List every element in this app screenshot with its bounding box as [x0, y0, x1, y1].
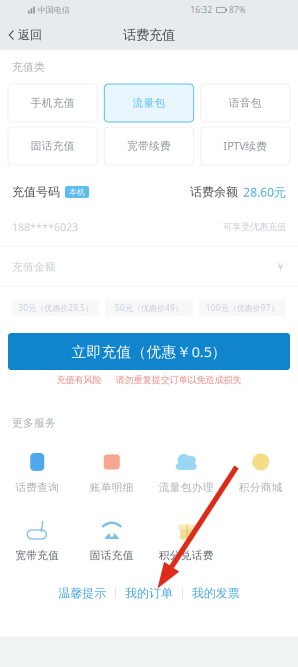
- staticText: 话费查询: [15, 481, 59, 494]
- staticText: 充值有风险: [56, 374, 101, 386]
- button[interactable]: 手机充值: [8, 84, 97, 122]
- button[interactable]: 返回: [0, 20, 50, 50]
- staticText: 积分商城: [239, 481, 283, 494]
- button[interactable]: 积分商城: [223, 450, 298, 494]
- button[interactable]: 我的发票: [183, 586, 249, 601]
- button[interactable]: 固话充值: [8, 127, 97, 165]
- button[interactable]: 宽带充值: [0, 518, 74, 562]
- staticText: 充值类: [12, 60, 45, 73]
- staticText: 账单明细: [90, 481, 134, 494]
- staticText: 充值号码: [12, 185, 60, 199]
- staticText: 本机: [69, 187, 85, 197]
- staticText: 充值金额: [12, 260, 56, 273]
- staticText: 流量包办理: [159, 481, 214, 494]
- staticText: 可享受优惠充值: [223, 221, 286, 233]
- staticText: 手机充值: [31, 96, 75, 109]
- staticText: 100元（优惠价97）: [206, 303, 279, 313]
- staticText: 固话充值: [90, 549, 134, 562]
- staticText: 188****6023: [12, 220, 78, 234]
- staticText: 28.60元: [243, 184, 286, 200]
- staticText: 流量包: [132, 96, 165, 109]
- button[interactable]: 立即充值（优惠￥0.5）: [8, 333, 290, 370]
- staticText: 30元（优惠价29.5）: [18, 303, 93, 313]
- button[interactable]: 50元（优惠价49）: [105, 300, 193, 316]
- staticText: 16:32: [190, 5, 212, 15]
- staticText: 87%: [229, 5, 246, 15]
- button[interactable]: 账单明细: [74, 450, 149, 494]
- staticText: 立即充值（优惠￥0.5）: [71, 342, 226, 361]
- staticText: 50元（优惠价49）: [115, 303, 183, 313]
- staticText: 返回: [18, 28, 42, 42]
- button[interactable]: 宽带续费: [104, 127, 194, 165]
- staticText: 请勿重复提交订单以免造成损失: [115, 374, 241, 386]
- staticText: 语音包: [229, 96, 262, 109]
- button[interactable]: 固话充值: [74, 518, 149, 562]
- staticText: 宽带续费: [127, 139, 171, 152]
- staticText: 话费余额: [190, 185, 238, 199]
- staticText: 中国电信: [38, 5, 70, 15]
- staticText: 固话充值: [31, 139, 75, 152]
- button[interactable]: 100元（优惠价97）: [199, 300, 286, 316]
- staticText: 话费充值: [123, 27, 175, 43]
- button[interactable]: 流量包办理: [149, 450, 223, 494]
- staticText: 积分兑话费: [159, 549, 214, 562]
- staticText: 温馨提示: [58, 586, 106, 601]
- staticText: IPTV续费: [223, 139, 267, 153]
- button[interactable]: 流量包: [104, 84, 194, 122]
- button[interactable]: 30元（优惠价29.5）: [12, 300, 99, 316]
- staticText: ￥: [275, 260, 286, 273]
- button[interactable]: 话费查询: [0, 450, 74, 494]
- staticText: 我的发票: [192, 586, 240, 601]
- staticText: 宽带充值: [15, 549, 59, 562]
- button[interactable]: 我的订单: [116, 586, 182, 601]
- button[interactable]: IPTV续费: [201, 127, 290, 165]
- staticText: 我的订单: [125, 586, 173, 601]
- button[interactable]: 温馨提示: [49, 586, 115, 601]
- button[interactable]: 语音包: [201, 84, 290, 122]
- staticText: 更多服务: [12, 416, 56, 429]
- button[interactable]: 积分兑话费: [149, 518, 223, 562]
